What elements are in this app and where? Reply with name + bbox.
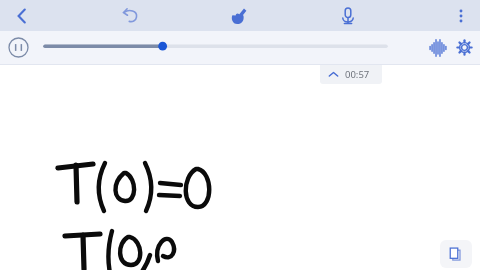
button[interactable]: Settings [450, 32, 478, 63]
button[interactable]: 00:57 [320, 65, 382, 84]
button[interactable]: Pause [3, 32, 34, 63]
button[interactable]: More options [441, 0, 480, 31]
button[interactable]: Pages [440, 240, 472, 268]
button[interactable]: Seek bar [44, 31, 424, 64]
button[interactable]: Undo [108, 0, 152, 31]
button[interactable]: Hand tool [216, 0, 260, 31]
button[interactable]: Microphone [326, 0, 370, 31]
button[interactable]: Back [0, 0, 44, 31]
staticText: 00:57 [345, 68, 370, 81]
button[interactable]: Audio waveform [424, 32, 451, 63]
